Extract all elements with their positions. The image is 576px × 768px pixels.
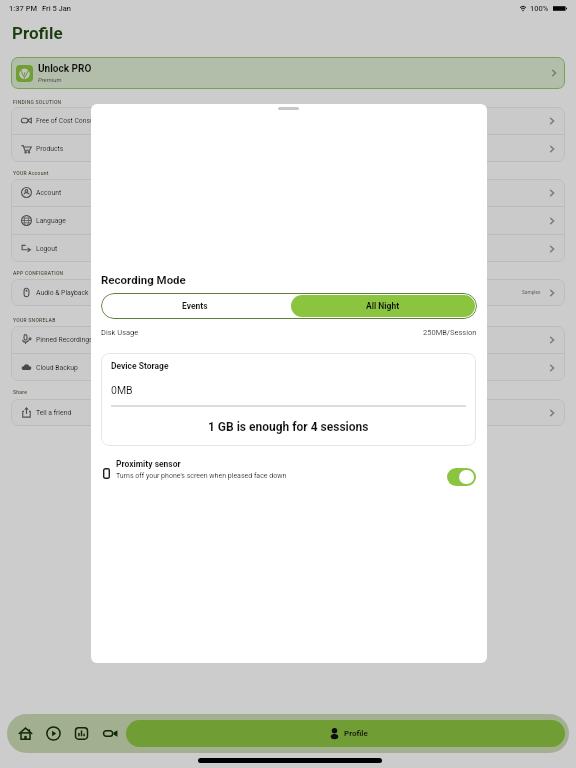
button[interactable]: Profile bbox=[126, 720, 565, 747]
button[interactable]: Language bbox=[11, 207, 565, 234]
staticText: Profile bbox=[12, 23, 63, 43]
button[interactable]: Unlock PRO bbox=[11, 57, 565, 89]
button[interactable]: Proximity sensor toggle bbox=[447, 468, 476, 486]
button[interactable]: All Night bbox=[291, 295, 475, 317]
button[interactable]: Products bbox=[11, 135, 565, 162]
staticText: 250MB/Session bbox=[423, 328, 477, 337]
staticText: Logout bbox=[36, 245, 58, 253]
button[interactable]: Cloud Backup bbox=[11, 354, 565, 381]
staticText: Fri 5 Jan bbox=[42, 4, 71, 13]
button[interactable]: Audio & Playback bbox=[11, 279, 565, 306]
staticText: 1:37 PM bbox=[9, 4, 37, 13]
staticText: Disk Usage bbox=[101, 328, 139, 337]
staticText: Device Storage bbox=[111, 361, 169, 371]
button[interactable]: Pinned Recordings bbox=[11, 326, 565, 353]
staticText: Events bbox=[182, 301, 208, 311]
staticText: APP CONFIGRATION bbox=[13, 270, 64, 276]
button[interactable]: Videos bbox=[96, 714, 124, 753]
staticText: All Night bbox=[366, 301, 400, 311]
staticText: Share bbox=[13, 389, 28, 395]
staticText: Pinned Recordings bbox=[36, 336, 93, 344]
staticText: FINDING SOLUTION bbox=[13, 99, 62, 105]
staticText: Profile bbox=[344, 729, 368, 738]
button[interactable]: Logout bbox=[11, 235, 565, 262]
button[interactable]: Free of Cost Consultation bbox=[11, 107, 565, 134]
staticText: Recording Mode bbox=[101, 273, 186, 286]
staticText: Samples bbox=[522, 290, 541, 296]
staticText: YOUR Account bbox=[13, 170, 49, 176]
button[interactable]: Statistics bbox=[67, 714, 95, 753]
staticText: Proximity sensor bbox=[116, 459, 181, 469]
staticText: YOUR SNORELAB bbox=[13, 317, 56, 323]
staticText: 0MB bbox=[111, 384, 133, 396]
button[interactable]: Tell a friend bbox=[11, 399, 565, 426]
staticText: Cloud Backup bbox=[36, 364, 78, 372]
staticText: Free of Cost Consultation bbox=[36, 117, 113, 125]
staticText: 100% bbox=[530, 4, 549, 13]
staticText: Turns off your phone's screen when pleas… bbox=[116, 472, 287, 480]
staticText: Account bbox=[36, 189, 62, 197]
button[interactable]: Home bbox=[11, 714, 39, 753]
staticText: Products bbox=[36, 145, 64, 153]
button[interactable]: Record bbox=[39, 714, 67, 753]
staticText: Unlock PRO bbox=[38, 63, 92, 75]
staticText: Premium bbox=[38, 76, 62, 83]
button[interactable]: Account bbox=[11, 179, 565, 206]
staticText: Language bbox=[36, 217, 66, 225]
button[interactable]: Events bbox=[101, 293, 289, 319]
staticText: 1 GB is enough for 4 sessions bbox=[208, 420, 369, 434]
staticText: Audio & Playback bbox=[36, 289, 89, 297]
staticText: Tell a friend bbox=[36, 409, 72, 417]
